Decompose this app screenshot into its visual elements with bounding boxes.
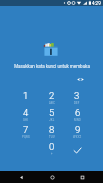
staticText: 9 [75,124,81,135]
staticText: 4 [23,107,29,118]
staticText: ABC [49,101,55,104]
button[interactable]: 1 [15,90,37,108]
staticText: DEF [74,101,80,104]
staticText: 5 [49,107,55,118]
staticText: 7 [23,124,29,135]
staticText: 4:29 [92,1,101,6]
button[interactable]: Confirm [68,141,86,159]
staticText: PQRS [22,135,30,138]
button[interactable]: Back [11,171,31,183]
button[interactable]: 3 [66,90,88,108]
staticText: + [51,152,53,155]
staticText: 1 [23,90,29,101]
button[interactable]: 7 [15,124,37,142]
button[interactable]: 2 [41,90,63,108]
button[interactable]: Show password [75,74,85,84]
staticText: WXYZ [73,135,82,138]
button[interactable]: 9 [66,124,88,142]
button[interactable]: 4 [15,107,37,125]
button[interactable]: Recents [72,171,92,183]
staticText: 8 [49,124,55,135]
staticText: 3 [74,90,80,101]
staticText: 0 [49,141,55,152]
button[interactable]: 0 [41,141,63,159]
staticText: TUV [49,135,55,138]
staticText: GHI [23,118,29,121]
staticText: MNO [74,118,81,121]
button[interactable]: 8 [41,124,63,142]
button[interactable]: Home [42,171,62,183]
button[interactable]: 5 [41,107,63,125]
button[interactable]: 6 [66,107,88,125]
staticText: Masukkan kata kunci untuk membuka [14,64,90,69]
staticText: JKL [49,118,55,121]
staticText: 6 [75,107,81,118]
staticText: 2 [49,90,55,101]
